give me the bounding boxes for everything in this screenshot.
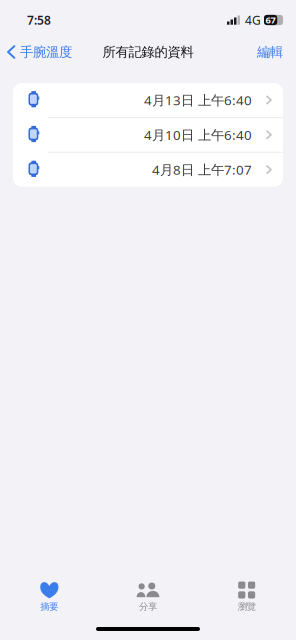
staticText: 瀏覽: [238, 601, 256, 612]
staticText: 7:58: [27, 12, 51, 28]
staticText: 4G: [245, 12, 261, 28]
button[interactable]: 手腕溫度: [0, 38, 78, 66]
staticText: 所有記錄的資料: [102, 44, 193, 60]
staticText: 編輯: [257, 44, 283, 60]
staticText: 摘要: [40, 601, 58, 612]
staticText: 手腕溫度: [20, 44, 72, 60]
staticText: 4月10日 上午6:40: [144, 126, 252, 144]
button[interactable]: 分享: [99, 576, 197, 618]
staticText: 4月8日 上午7:07: [152, 161, 252, 178]
staticText: 4月13日 上午6:40: [144, 91, 252, 109]
staticText: 分享: [139, 601, 157, 612]
button[interactable]: 瀏覽: [197, 576, 296, 618]
button[interactable]: 摘要: [0, 576, 99, 618]
button[interactable]: 編輯: [247, 38, 296, 66]
button[interactable]: 4月13日 上午6:40: [13, 83, 283, 117]
button[interactable]: 4月10日 上午6:40: [13, 118, 283, 152]
button[interactable]: 4月8日 上午7:07: [13, 153, 283, 187]
staticText: 67: [266, 14, 276, 26]
